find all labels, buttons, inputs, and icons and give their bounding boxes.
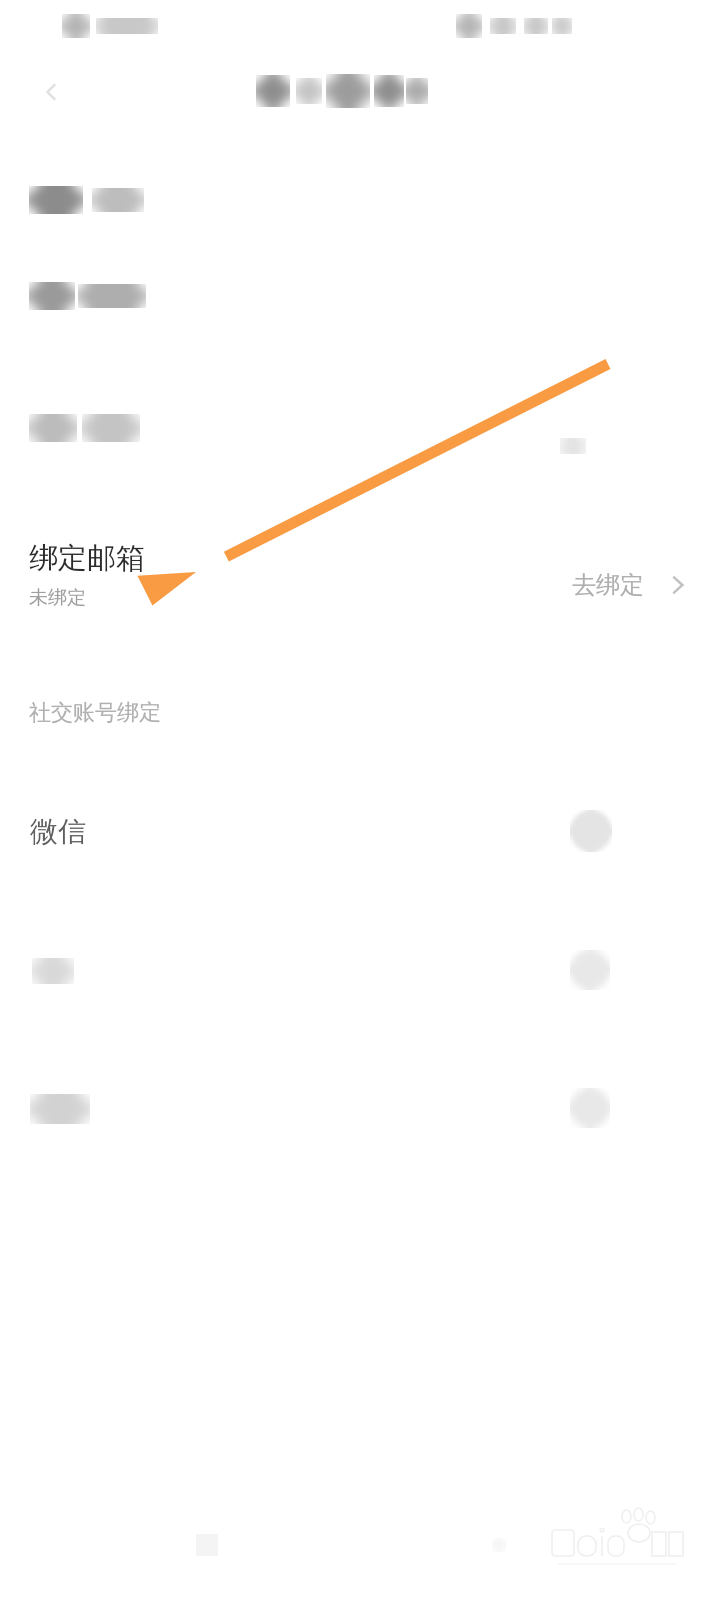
staticText: 未绑定 [29,586,86,610]
button[interactable]: 绑定邮箱 [0,528,720,644]
button[interactable]: Back [18,62,84,122]
staticText: 社交账号绑定 [29,699,161,727]
staticText: 绑定邮箱 [29,540,145,577]
staticText: 去绑定 [572,570,644,600]
staticText: 微信 [30,814,86,849]
button[interactable]: 微信 [0,790,720,872]
